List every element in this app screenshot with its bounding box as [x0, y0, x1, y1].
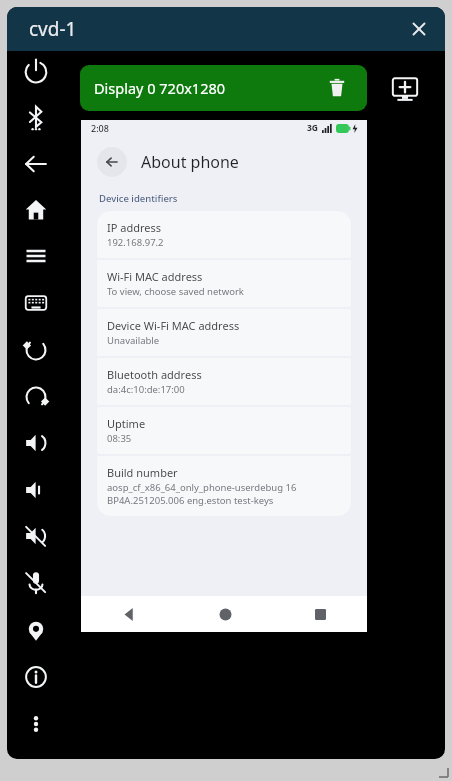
button[interactable]: Build number: [97, 456, 351, 516]
button[interactable]: More options: [17, 705, 55, 743]
staticText: da:4c:10:de:17:00: [107, 383, 185, 396]
button[interactable]: Info: [17, 658, 55, 696]
staticText: Build number: [107, 465, 178, 480]
button[interactable]: IP address: [97, 211, 351, 258]
button[interactable]: Home: [211, 600, 239, 628]
staticText: Wi-Fi MAC address: [107, 269, 203, 284]
button[interactable]: Recent apps: [306, 600, 334, 628]
button[interactable]: Keyboard: [17, 284, 55, 322]
button[interactable]: Bluetooth address: [97, 358, 351, 405]
button[interactable]: Location: [17, 611, 55, 649]
button[interactable]: Device Wi-Fi MAC address: [97, 309, 351, 356]
staticText: Uptime: [107, 416, 146, 431]
button[interactable]: Power: [17, 52, 55, 90]
button[interactable]: Add display: [386, 70, 424, 108]
button[interactable]: Menu: [17, 237, 55, 275]
button[interactable]: Back: [17, 145, 55, 183]
staticText: IP address: [107, 220, 162, 235]
button[interactable]: Volume up: [17, 424, 55, 462]
staticText: Device identifiers: [99, 192, 178, 205]
staticText: 3G: [307, 122, 319, 134]
staticText: 192.168.97.2: [107, 236, 164, 249]
staticText: BP4A.251205.006 eng.eston test-keys: [107, 494, 274, 507]
staticText: To view, choose saved network: [107, 285, 244, 298]
button[interactable]: Rotate right: [17, 378, 55, 416]
staticText: aosp_cf_x86_64_only_phone-userdebug 16: [107, 481, 297, 494]
button[interactable]: Mic off: [17, 564, 55, 602]
button[interactable]: Uptime: [97, 407, 351, 454]
button[interactable]: Home: [17, 191, 55, 229]
button[interactable]: Volume down: [17, 471, 55, 509]
button[interactable]: Close: [403, 13, 435, 45]
button[interactable]: Back: [115, 600, 143, 628]
button[interactable]: Bluetooth: [17, 98, 55, 136]
staticText: cvd-1: [29, 16, 77, 42]
staticText: 08:35: [107, 432, 132, 445]
button[interactable]: Display 0 720x1280: [80, 65, 367, 111]
button[interactable]: Rotate left: [17, 331, 55, 369]
staticText: Device Wi-Fi MAC address: [107, 318, 240, 333]
staticText: 2:08: [91, 122, 109, 134]
button[interactable]: Mute: [17, 517, 55, 555]
button[interactable]: Wi-Fi MAC address: [97, 260, 351, 307]
staticText: Bluetooth address: [107, 367, 202, 382]
staticText: Unavailable: [107, 334, 160, 347]
button[interactable]: Back: [97, 147, 127, 177]
staticText: Display 0 720x1280: [94, 78, 226, 98]
staticText: About phone: [141, 151, 239, 173]
button[interactable]: Delete display: [325, 76, 349, 100]
